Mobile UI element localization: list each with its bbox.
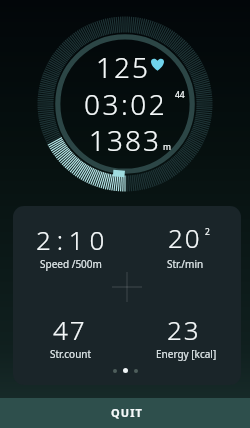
staticText: 47 [53, 312, 87, 347]
staticText: Energy [kcal] [156, 347, 217, 361]
staticText: Str.count [50, 347, 92, 361]
staticText: QUIT [111, 405, 144, 420]
staticText: 44 [175, 89, 185, 101]
staticText: 125 [96, 48, 150, 86]
staticText: 2:10 [36, 222, 111, 257]
staticText: 23 [167, 312, 201, 347]
staticText: Speed /500m [40, 257, 102, 271]
staticText: 03:02 [84, 85, 168, 123]
staticText: m [163, 141, 171, 153]
staticText: 20 [168, 220, 202, 255]
button[interactable]: QUIT [0, 398, 250, 428]
staticText: 1383 [89, 121, 161, 159]
staticText: Str./min [167, 257, 204, 271]
staticText: 2 [205, 226, 210, 238]
